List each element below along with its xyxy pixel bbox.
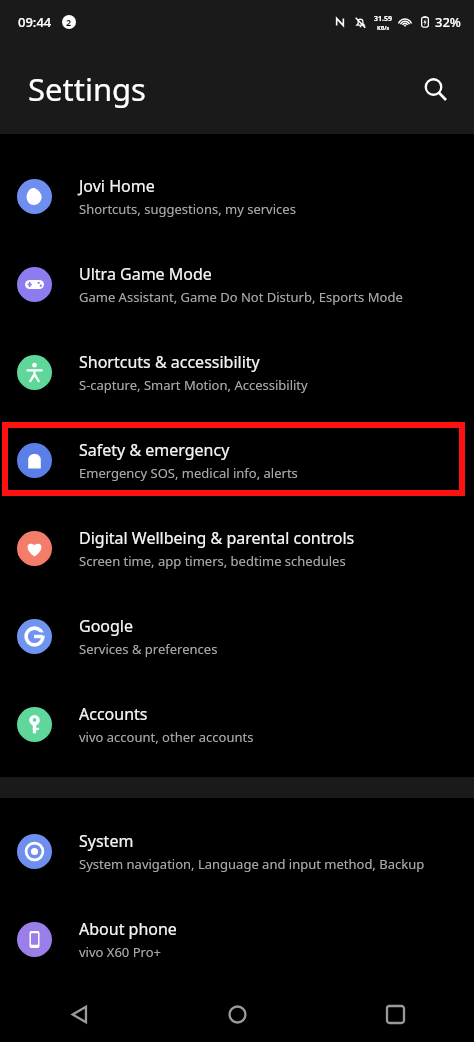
staticText: 31.59 [374, 14, 392, 24]
staticText: Ultra Game Mode [79, 263, 212, 285]
staticText: 32% [435, 13, 461, 31]
button[interactable]: Google [0, 592, 474, 680]
staticText: vivo X60 Pro+ [79, 943, 161, 961]
button[interactable]: Search [412, 66, 458, 112]
staticText: Shortcuts, suggestions, my services [79, 200, 296, 218]
staticText: Safety & emergency [79, 439, 230, 461]
staticText: About phone [79, 918, 177, 940]
staticText: Game Assistant, Game Do Not Disturb, Esp… [79, 288, 403, 306]
button[interactable]: Back [0, 986, 158, 1042]
button[interactable]: Jovi Home [0, 152, 474, 240]
staticText: System [79, 830, 134, 852]
button[interactable]: Ultra Game Mode [0, 240, 474, 328]
staticText: Accounts [79, 703, 148, 725]
button[interactable]: Safety & emergency [0, 416, 474, 504]
staticText: 09:44 [18, 13, 52, 31]
staticText: Emergency SOS, medical info, alerts [79, 464, 298, 482]
staticText: S-capture, Smart Motion, Accessibility [79, 376, 308, 394]
staticText: KB/s [377, 24, 390, 31]
button[interactable]: System [0, 807, 474, 895]
staticText: Digital Wellbeing & parental controls [79, 527, 355, 549]
staticText: Services & preferences [79, 640, 218, 658]
button[interactable]: Home [158, 986, 316, 1042]
staticText: Google [79, 615, 134, 637]
button[interactable]: Accounts [0, 680, 474, 768]
button[interactable]: Shortcuts & accessibility [0, 328, 474, 416]
button[interactable]: Recents [316, 986, 474, 1042]
button[interactable]: Digital Wellbeing & parental controls [0, 504, 474, 592]
staticText: vivo account, other accounts [79, 728, 254, 746]
staticText: System navigation, Language and input me… [79, 855, 425, 873]
staticText: Jovi Home [79, 175, 155, 197]
staticText: Settings [28, 68, 146, 110]
button[interactable]: About phone [0, 895, 474, 983]
staticText: 2 [66, 16, 72, 28]
staticText: Shortcuts & accessibility [79, 351, 260, 373]
staticText: Screen time, app timers, bedtime schedul… [79, 552, 346, 570]
